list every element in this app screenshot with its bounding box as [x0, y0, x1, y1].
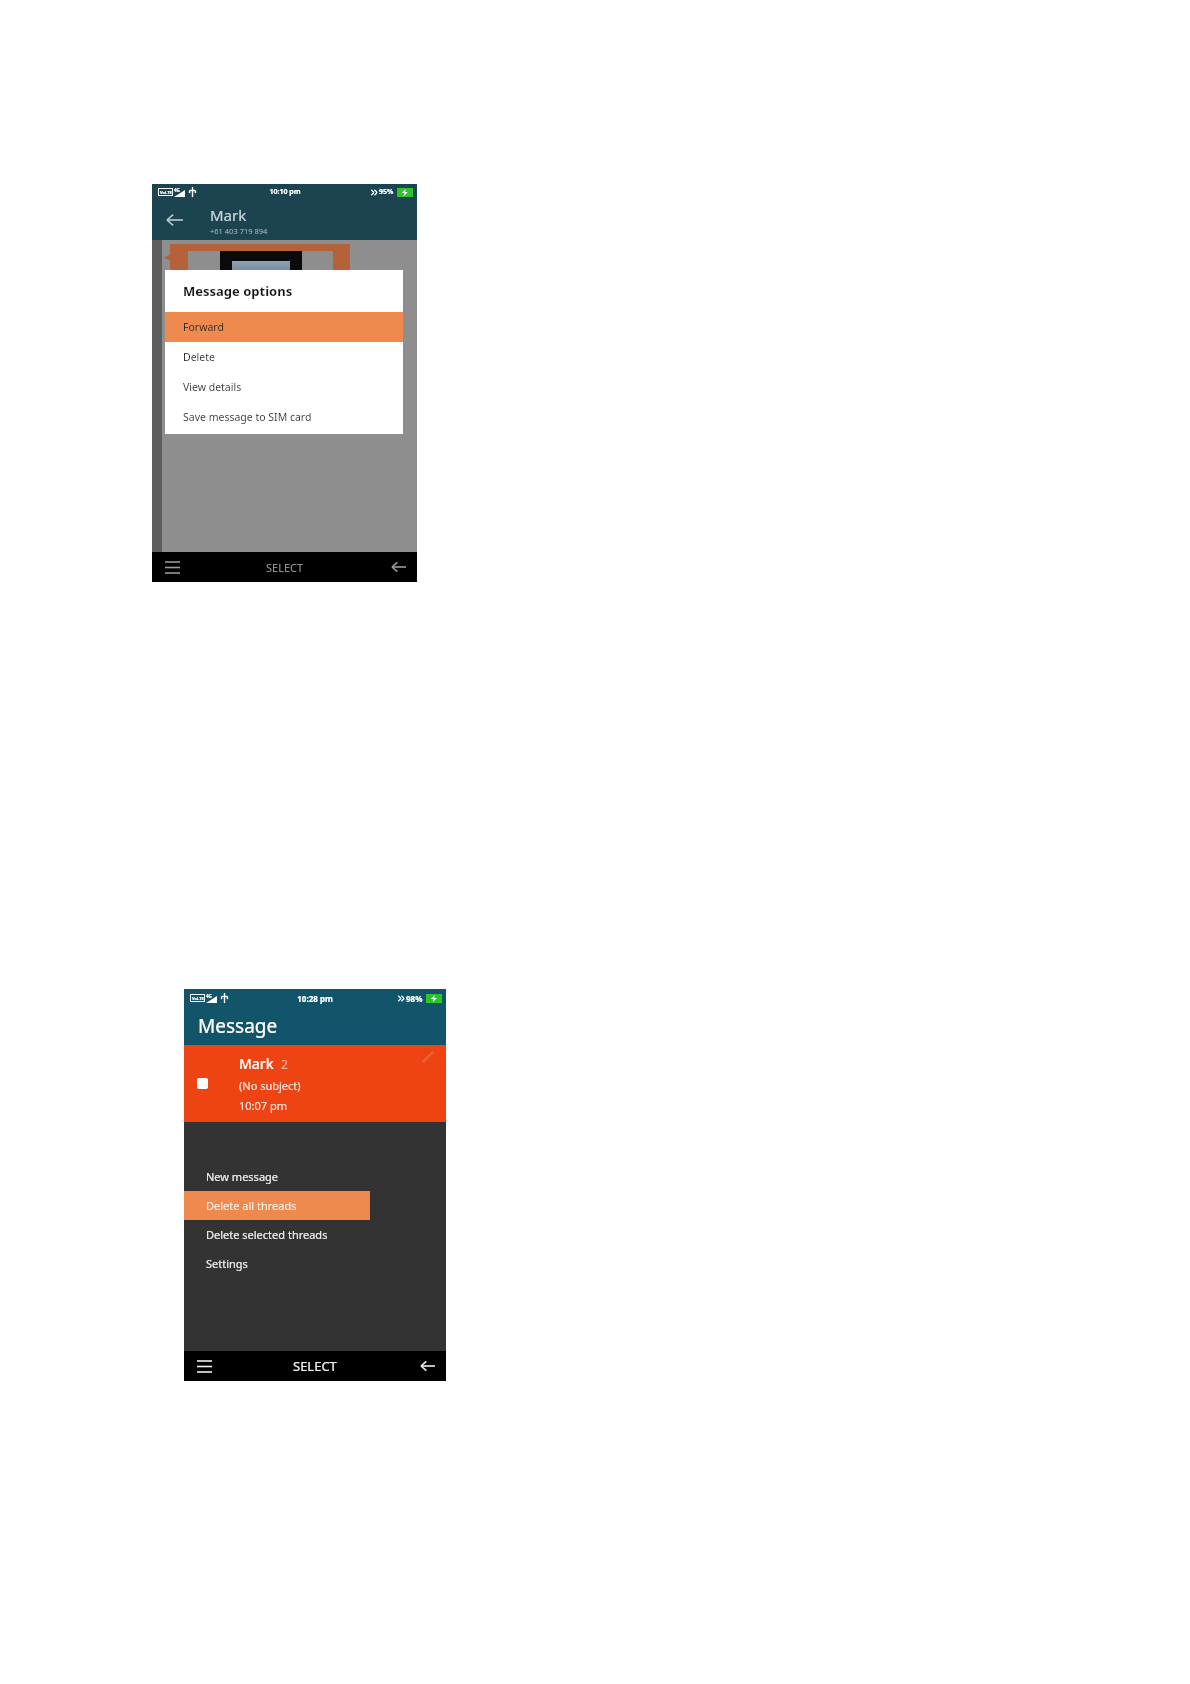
button[interactable]: SELECT	[279, 1353, 351, 1379]
staticText: 10:28 pm	[297, 993, 333, 1004]
staticText: 4G	[174, 187, 180, 193]
staticText: 10:07 pm	[239, 1098, 288, 1113]
button[interactable]: Settings	[184, 1249, 370, 1278]
staticText: Forward	[183, 320, 224, 334]
staticText: 2	[281, 1056, 288, 1072]
staticText: 95%	[379, 187, 394, 197]
staticText: Message options	[183, 282, 293, 300]
button[interactable]: View details	[165, 372, 403, 402]
staticText: Mark	[239, 1054, 274, 1073]
staticText: New message	[206, 1169, 279, 1184]
staticText: 10:10 pm	[269, 187, 301, 197]
button[interactable]: Delete	[165, 342, 403, 372]
staticText: SELECT	[293, 1357, 337, 1375]
button[interactable]: Select conversation	[197, 1078, 208, 1089]
staticText: SELECT	[266, 560, 304, 575]
button[interactable]	[170, 244, 350, 314]
staticText: VoLTE	[192, 996, 204, 1001]
button[interactable]: Delete all threads	[184, 1191, 370, 1220]
button[interactable]: Back	[416, 1354, 440, 1378]
button[interactable]: Back	[162, 207, 188, 233]
button[interactable]: Delete selected threads	[184, 1220, 370, 1249]
button[interactable]: Forward	[165, 312, 403, 342]
staticText: Delete all threads	[206, 1198, 297, 1213]
button[interactable]: Menu	[160, 555, 184, 579]
staticText: View details	[183, 380, 242, 394]
staticText: VoLTE	[160, 190, 172, 195]
staticText: Mark	[210, 205, 247, 225]
button[interactable]: Select conversation	[184, 1045, 446, 1122]
button[interactable]: Back	[387, 555, 411, 579]
staticText: +61 403 719 894	[210, 226, 268, 236]
staticText: Delete selected threads	[206, 1227, 328, 1242]
button[interactable]: Menu	[192, 1354, 216, 1378]
staticText: 4G	[206, 993, 212, 999]
staticText: Save message to SIM card	[183, 410, 312, 424]
button[interactable]: New message	[184, 1162, 370, 1191]
staticText: Message	[198, 1013, 278, 1039]
staticText: Settings	[206, 1256, 248, 1271]
staticText: (No subject)	[239, 1078, 301, 1093]
staticText: 98%	[406, 993, 423, 1004]
button[interactable]: Save message to SIM card	[165, 402, 403, 432]
button[interactable]: SELECT	[252, 556, 318, 579]
staticText: Delete	[183, 350, 215, 364]
